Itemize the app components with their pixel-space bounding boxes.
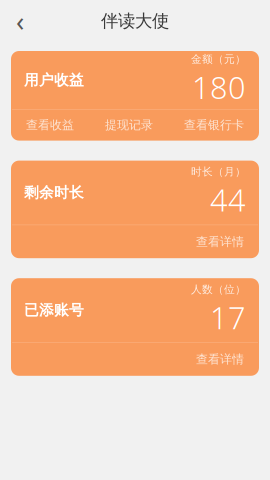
staticText: ‹ [16,3,24,39]
staticText: 剩余时长 [24,184,84,202]
staticText: 金额（元） [191,53,246,66]
button[interactable]: 查看收益 [24,112,76,138]
staticText: 人数（位） [191,283,246,296]
button[interactable]: 查看详情 [194,228,246,255]
button[interactable]: 返回 [0,4,40,38]
staticText: 时长（月） [191,165,246,178]
staticText: 查看收益 [26,118,74,132]
staticText: 查看详情 [196,234,244,249]
staticText: 查看详情 [196,352,244,367]
staticText: 提现记录 [105,118,153,132]
staticText: 伴读大使 [101,10,169,32]
button[interactable]: 查看银行卡 [182,112,246,138]
staticText: 已添账号 [24,301,84,319]
staticText: 17 [210,297,246,338]
staticText: 44 [210,179,246,220]
button[interactable]: 提现记录 [103,112,155,138]
button[interactable]: 查看详情 [194,346,246,373]
staticText: 查看银行卡 [184,118,244,132]
staticText: 180 [192,67,246,107]
staticText: 用户收益 [24,71,84,89]
